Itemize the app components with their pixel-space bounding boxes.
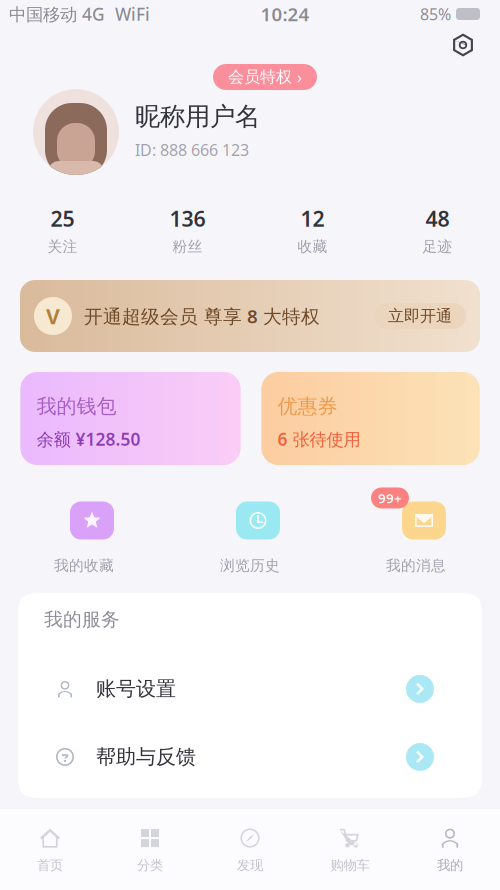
button[interactable]: 帮助与反馈 (18, 723, 482, 791)
staticText: 我的服务 (44, 608, 120, 631)
button[interactable]: Settings (448, 30, 478, 60)
staticText: 浏览历史 (220, 556, 280, 574)
button[interactable]: 发现 (200, 808, 300, 890)
staticText: 余额 ¥128.50 (36, 428, 140, 451)
staticText: 账号设置 (96, 677, 176, 701)
staticText: › (297, 66, 302, 88)
staticText: 我的收藏 (54, 556, 114, 574)
staticText: 10:24 (260, 2, 309, 26)
staticText: ID: 888 666 123 (135, 139, 249, 160)
button[interactable]: 首页 (0, 808, 100, 890)
button[interactable]: 浏览历史 (167, 481, 333, 589)
staticText: 48 (425, 204, 449, 233)
staticText: 发现 (237, 857, 263, 873)
button[interactable]: 会员特权 (213, 64, 317, 90)
staticText: 会员特权 (228, 67, 292, 87)
button[interactable]: 12 (250, 182, 375, 278)
staticText: 25 (50, 204, 74, 233)
button[interactable]: 我的钱包 (20, 372, 240, 465)
staticText: 12 (300, 204, 324, 233)
staticText: 立即开通 (388, 306, 452, 326)
staticText: 足迹 (422, 238, 452, 256)
staticText: 首页 (37, 857, 63, 873)
staticText: 我的钱包 (36, 394, 116, 419)
button[interactable]: 分类 (100, 808, 200, 890)
staticText: 136 (169, 204, 205, 233)
staticText: V (46, 302, 60, 330)
staticText: 关注 (47, 238, 77, 256)
staticText: 优惠券 (277, 394, 337, 419)
staticText: 我的 (437, 857, 463, 873)
staticText: 购物车 (330, 857, 369, 873)
staticText: 粉丝 (172, 238, 202, 256)
staticText: 6 张待使用 (277, 428, 360, 451)
staticText: 99+ (378, 489, 402, 507)
button[interactable]: Profile photo (33, 89, 119, 175)
button[interactable]: 136 (125, 182, 250, 278)
button[interactable]: 账号设置 (18, 655, 482, 723)
staticText: 开通超级会员 尊享 8 大特权 (84, 304, 320, 328)
button[interactable]: 48 (375, 182, 500, 278)
staticText: 昵称用户名 (135, 101, 260, 132)
staticText: 帮助与反馈 (96, 745, 196, 769)
staticText: 85% (420, 3, 451, 25)
button[interactable]: 99+ (333, 481, 499, 589)
button[interactable]: 我的 (400, 808, 500, 890)
button[interactable]: 购物车 (300, 808, 400, 890)
staticText: 收藏 (297, 238, 327, 256)
staticText: 分类 (137, 857, 163, 873)
button[interactable]: 25 (0, 182, 125, 278)
button[interactable]: 优惠券 (261, 372, 479, 465)
button[interactable]: 我的收藏 (1, 481, 167, 589)
staticText: 中国移动 4G WiFi (9, 2, 150, 25)
staticText: 我的消息 (386, 556, 446, 574)
button[interactable]: V (0, 278, 500, 352)
